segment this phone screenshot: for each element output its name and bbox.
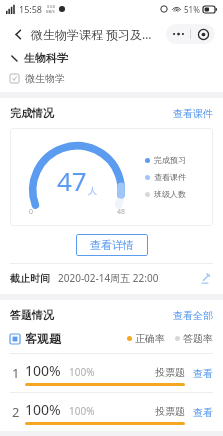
button[interactable]: 2 <box>10 393 213 431</box>
staticText: 投票题 <box>155 366 185 379</box>
button[interactable]: 查看 <box>193 367 213 380</box>
staticText: 48 <box>117 207 126 217</box>
button[interactable]: 查看详情 <box>76 234 148 256</box>
staticText: 2020-02-14周五 22:00 <box>58 271 159 285</box>
staticText: 答题率 <box>183 332 213 345</box>
staticText: 答题情况 <box>10 308 54 322</box>
button[interactable]: More options <box>166 24 190 44</box>
staticText: 15:58 <box>19 3 43 15</box>
staticText: 查看全部 <box>173 309 213 322</box>
staticText: 正确率 <box>135 332 165 345</box>
staticText: 截止时间 <box>10 272 50 285</box>
staticText: 查看 <box>193 406 213 419</box>
button[interactable]: 查看 <box>193 406 213 419</box>
staticText: 100% <box>25 400 61 419</box>
button[interactable]: 查看全部 <box>173 309 213 322</box>
staticText: 0 <box>29 207 34 217</box>
staticText: 查看详情 <box>90 238 134 252</box>
button[interactable]: 查看课件 <box>173 107 213 120</box>
staticText: 0.60 <box>47 4 55 9</box>
staticText: 微生物学课程 预习及… <box>31 26 152 42</box>
button[interactable]: Edit deadline <box>197 270 213 286</box>
staticText: 完成预习 <box>154 155 186 165</box>
button[interactable]: 微生物学 <box>10 72 65 85</box>
staticText: 1 <box>12 364 20 382</box>
staticText: 投票题 <box>155 405 185 418</box>
staticText: 生物科学 <box>24 51 68 65</box>
staticText: 查看 <box>193 367 213 380</box>
staticText: 100% <box>69 404 95 418</box>
staticText: 51% <box>184 4 200 15</box>
button[interactable]: 1 <box>10 354 213 392</box>
button[interactable]: Close <box>191 24 215 44</box>
staticText: 查看课件 <box>173 107 213 120</box>
staticText: KB/S <box>46 9 55 14</box>
staticText: 客观题 <box>25 331 61 346</box>
staticText: 47 <box>57 163 87 198</box>
staticText: 100% <box>25 361 61 380</box>
button[interactable]: Back <box>8 24 28 44</box>
staticText: 2 <box>12 403 20 421</box>
staticText: 班级人数 <box>154 189 186 199</box>
staticText: 微生物学 <box>25 72 65 85</box>
staticText: 查看课件 <box>154 172 186 182</box>
staticText: 人 <box>88 185 97 196</box>
staticText: 完成情况 <box>10 106 54 120</box>
staticText: 100% <box>69 365 95 379</box>
